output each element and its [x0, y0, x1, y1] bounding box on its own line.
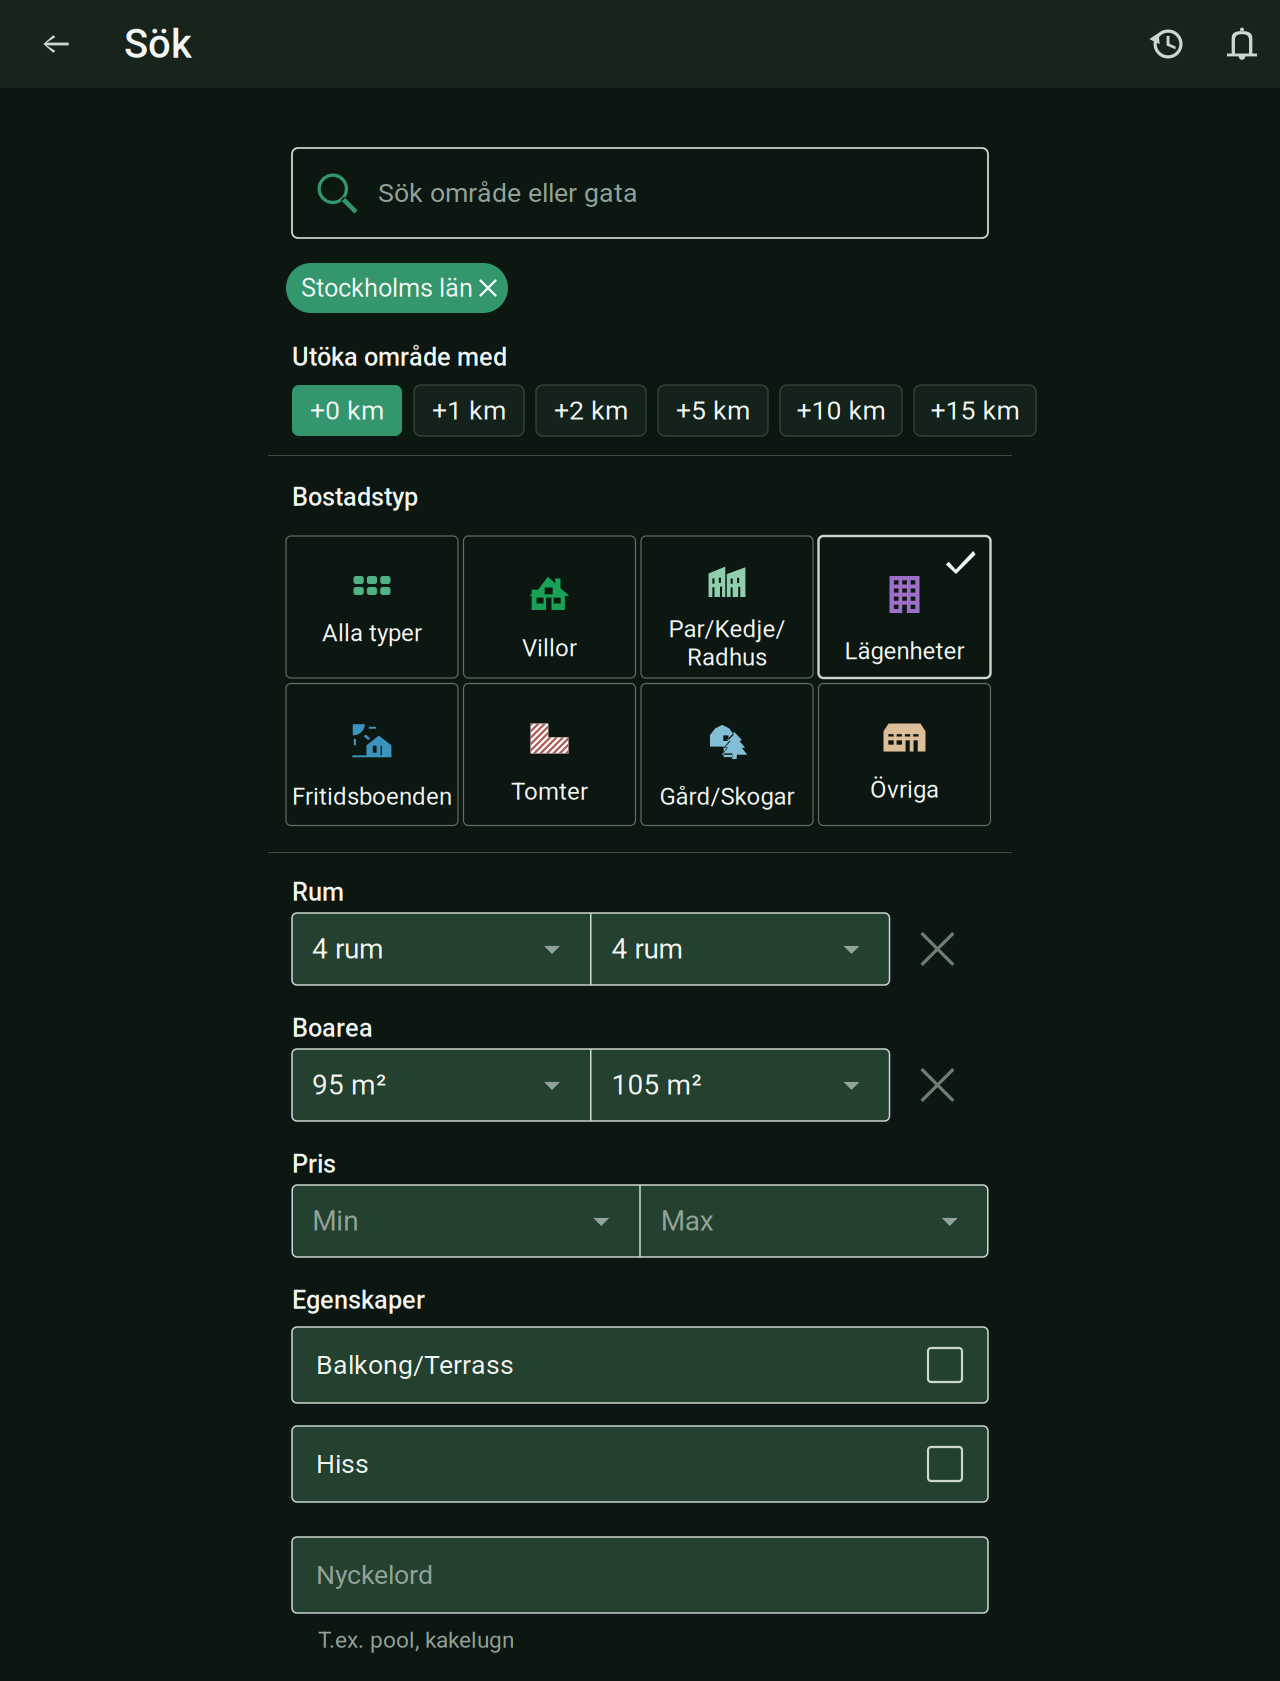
button[interactable]: Övriga	[818, 683, 990, 825]
staticText: Par/Kedje/	[668, 615, 785, 643]
button[interactable]: Balkong/Terrass	[292, 1327, 988, 1403]
staticText: Övriga	[870, 775, 939, 804]
staticText: Alla typer	[322, 619, 422, 647]
staticText: +2 km	[554, 395, 628, 426]
staticText: Sök område eller gata	[378, 177, 638, 209]
button[interactable]: +10 km	[780, 385, 902, 436]
button[interactable]: +2 km	[536, 385, 646, 436]
button[interactable]: Clear area	[915, 1063, 959, 1107]
staticText: +10 km	[796, 395, 885, 426]
button[interactable]: Clear rooms	[915, 927, 959, 971]
staticText: +0 km	[310, 395, 384, 426]
button[interactable]: +15 km	[914, 385, 1036, 436]
button[interactable]: Min	[292, 1185, 988, 1257]
staticText: 4 rum	[312, 933, 384, 965]
button[interactable]: Stockholms län	[286, 263, 508, 313]
button[interactable]: Tomter	[463, 683, 635, 825]
button[interactable]: Par/Kedje/	[641, 536, 813, 678]
staticText: Max	[661, 1205, 714, 1237]
staticText: Radhus	[687, 643, 767, 671]
staticText: Boarea	[292, 1013, 373, 1043]
staticText: Hiss	[316, 1448, 369, 1480]
button[interactable]: Sök område eller gata	[292, 148, 988, 238]
button[interactable]: Hiss	[292, 1426, 988, 1502]
staticText: Utöka område med	[292, 342, 507, 372]
button[interactable]: 95 m²	[292, 1049, 889, 1121]
staticText: +5 km	[676, 395, 750, 426]
button[interactable]: +1 km	[414, 385, 524, 436]
staticText: Nyckelord	[316, 1559, 433, 1591]
staticText: Tomter	[511, 777, 588, 806]
staticText: Villor	[522, 634, 577, 662]
button[interactable]: Notifications	[1204, 0, 1280, 88]
button[interactable]: +5 km	[658, 385, 768, 436]
staticText: Egenskaper	[292, 1285, 425, 1315]
staticText: 4 rum	[611, 933, 683, 965]
button[interactable]: 4 rum	[292, 913, 889, 985]
staticText: 95 m²	[312, 1069, 386, 1101]
staticText: Fritidsboenden	[292, 782, 452, 811]
staticText: +1 km	[432, 395, 506, 426]
staticText: Rum	[292, 877, 344, 907]
staticText: Balkong/Terrass	[316, 1349, 514, 1381]
button[interactable]: Lägenheter	[818, 536, 990, 678]
staticText: Pris	[292, 1149, 336, 1179]
button[interactable]: Back	[0, 0, 112, 88]
button[interactable]: Fritidsboenden	[286, 683, 458, 825]
button[interactable]: Nyckelord	[292, 1537, 988, 1613]
button[interactable]: +0 km	[292, 385, 402, 436]
staticText: Stockholms län	[301, 273, 473, 303]
staticText: Min	[312, 1205, 358, 1237]
staticText: Gård/Skogar	[659, 782, 794, 811]
staticText: Sök	[124, 21, 192, 67]
button[interactable]: History	[1128, 0, 1204, 88]
staticText: +15 km	[930, 395, 1019, 426]
button[interactable]: Gård/Skogar	[641, 683, 813, 825]
staticText: Lägenheter	[844, 637, 964, 665]
staticText: T.ex. pool, kakelugn	[318, 1627, 515, 1653]
staticText: 105 m²	[611, 1069, 701, 1101]
button[interactable]: Villor	[463, 536, 635, 678]
button[interactable]: Alla typer	[286, 536, 458, 678]
staticText: Bostadstyp	[292, 482, 418, 512]
